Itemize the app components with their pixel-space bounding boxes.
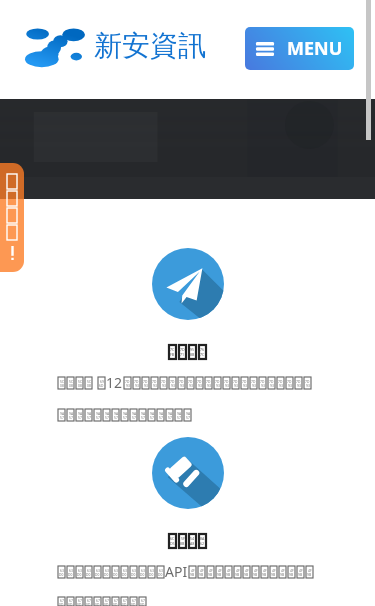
staticText: 93 [135, 383, 139, 387]
staticText: 93 [225, 383, 229, 387]
staticText: 7D [296, 379, 301, 383]
staticText: 93 [144, 383, 148, 387]
staticText: 9B [235, 572, 240, 576]
staticText: 67 [105, 598, 109, 602]
staticText: 7D [125, 379, 130, 383]
staticText: 4F [281, 568, 285, 572]
staticText: 9B [208, 572, 213, 576]
staticText: D0 [149, 572, 154, 576]
staticText: 4F [191, 568, 195, 572]
staticText: 7D [305, 379, 310, 383]
staticText: 7D [242, 379, 247, 383]
staticText: 9B [226, 572, 231, 576]
staticText: API [165, 562, 188, 581]
staticText: 63 [114, 568, 118, 572]
staticText: 08 [69, 383, 73, 387]
staticText: 7D [134, 379, 139, 383]
staticText: MENU [287, 36, 343, 61]
staticText: 0D [86, 602, 91, 606]
staticText: 67 [69, 598, 73, 602]
staticText: 12 [106, 373, 123, 392]
staticText: D0 [104, 572, 109, 576]
staticText: 63 [132, 568, 136, 572]
staticText: 67 [132, 598, 136, 602]
button[interactable]: Legal services [152, 437, 224, 509]
staticText: 9B [262, 572, 267, 576]
staticText: 4F [299, 568, 303, 572]
staticText: 0D [59, 602, 64, 606]
staticText: 57 [69, 415, 73, 419]
staticText: 7D [188, 379, 193, 383]
staticText: 57 [186, 415, 190, 419]
staticText: 4F [236, 568, 240, 572]
button[interactable]: MENU [245, 27, 354, 70]
staticText: 8A [200, 536, 205, 541]
staticText: 63 [96, 568, 100, 572]
staticText: 76 [200, 347, 205, 352]
staticText: 9A [186, 411, 190, 415]
staticText: 57 [177, 415, 181, 419]
staticText: 4F [227, 568, 231, 572]
staticText: 7D [179, 379, 184, 383]
staticText: 0D [140, 602, 145, 606]
staticText: 9B [307, 572, 312, 576]
staticText: 57 [96, 415, 100, 419]
staticText: 9B [199, 572, 204, 576]
staticText: 7D [269, 379, 274, 383]
staticText: 57 [132, 415, 136, 419]
staticText: 4F [263, 568, 267, 572]
staticText: D0 [140, 572, 145, 576]
button[interactable]: Send message [152, 248, 224, 320]
staticText: 9A [132, 411, 136, 415]
staticText: 9A [96, 411, 100, 415]
staticText: 67 [78, 598, 82, 602]
staticText: 5C [78, 379, 82, 383]
staticText: 67 [87, 598, 91, 602]
staticText: 54 [190, 536, 195, 541]
staticText: 93 [198, 383, 202, 387]
staticText: 93 [126, 383, 130, 387]
staticText: 0D [104, 602, 109, 606]
staticText: 93 [306, 383, 310, 387]
staticText: 0D [131, 602, 136, 606]
staticText: 9A [159, 411, 163, 415]
staticText: 63 [105, 568, 109, 572]
staticText: 57 [123, 415, 127, 419]
staticText: 5C [60, 379, 64, 383]
staticText: D0 [158, 572, 163, 576]
staticText: 9B [244, 572, 249, 576]
staticText: D0 [77, 572, 82, 576]
staticText: 7D [215, 379, 220, 383]
staticText: 9B [280, 572, 285, 576]
staticText: 8B [190, 352, 195, 357]
staticText: 93 [189, 383, 193, 387]
staticText: 9B [253, 572, 258, 576]
staticText: 7D [251, 379, 256, 383]
button[interactable]: Contact us [0, 163, 24, 272]
staticText: D0 [86, 572, 91, 576]
staticText: 93 [234, 383, 238, 387]
staticText: 9B [190, 572, 195, 576]
staticText: 9A [105, 411, 109, 415]
staticText: 5F [181, 536, 185, 541]
staticText: 93 [216, 383, 220, 387]
staticText: 新安資訊 [94, 28, 206, 63]
staticText: 4F [254, 568, 258, 572]
staticText: 9A [69, 411, 73, 415]
staticText: 93 [252, 383, 256, 387]
staticText: 0D [77, 602, 82, 606]
staticText: 7D [260, 379, 265, 383]
staticText: 57 [105, 415, 109, 419]
staticText: 0D [95, 602, 100, 606]
staticText: 57 [141, 415, 145, 419]
staticText: D0 [122, 572, 127, 576]
staticText: 63 [87, 568, 91, 572]
staticText: 67 [141, 598, 145, 602]
staticText: 08 [60, 383, 64, 387]
staticText: 7C [200, 352, 205, 357]
staticText: 95 [190, 347, 195, 352]
staticText: 63 [78, 568, 82, 572]
staticText: 63 [141, 568, 145, 572]
staticText: 7D [206, 379, 211, 383]
staticText: D5 [170, 541, 175, 546]
